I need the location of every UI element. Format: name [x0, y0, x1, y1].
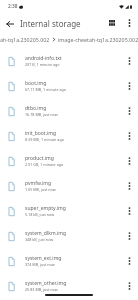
staticText: ah-tq1a.230205.002: [0, 36, 50, 43]
button[interactable]: More options for boot.img: [120, 73, 138, 98]
staticText: product.img: [25, 155, 54, 162]
button[interactable]: system_dlkm.img: [0, 223, 138, 248]
staticText: 16.78 MB, just now: [25, 112, 58, 117]
button[interactable]: More options for android-info.txt: [120, 48, 138, 73]
staticText: boot.img: [25, 80, 47, 87]
button[interactable]: boot.img: [0, 73, 138, 98]
button[interactable]: ah-tq1a.230205.002: [0, 36, 50, 43]
button[interactable]: pvmfw.img: [0, 173, 138, 198]
staticText: system_other.img: [25, 280, 67, 287]
staticText: 25.83 MB, just now: [25, 287, 58, 292]
button[interactable]: More options for system_ext.img: [120, 248, 138, 273]
staticText: dtbo.img: [25, 105, 47, 112]
staticText: 2.91 GB, 1 minute ago: [25, 162, 64, 167]
staticText: Internal storage: [20, 18, 104, 29]
staticText: android-info.txt: [25, 55, 62, 62]
button[interactable]: More options for system_other.img: [120, 273, 138, 298]
staticText: 2:38: [8, 3, 18, 10]
button[interactable]: dtbo.img: [0, 98, 138, 123]
staticText: super_empty.img: [25, 205, 66, 212]
staticText: 67.11 MB, 1 minute ago: [25, 87, 66, 92]
button[interactable]: More options for super_empty.img: [120, 198, 138, 223]
staticText: pvmfw.img: [25, 180, 52, 187]
button[interactable]: product.img: [0, 148, 138, 173]
button[interactable]: system_ext.img: [0, 248, 138, 273]
button[interactable]: More options: [120, 14, 138, 32]
staticText: system_ext.img: [25, 255, 62, 262]
staticText: image-cheetah-tq1a.230205.002: [58, 36, 138, 43]
staticText: 8.39 MB, 1 minute ago: [25, 137, 64, 142]
button[interactable]: More options for system_dlkm.img: [120, 223, 138, 248]
staticText: 374 MB, just now: [25, 262, 55, 267]
button[interactable]: More options for init_boot.img: [120, 123, 138, 148]
staticText: 348 kB, just now: [25, 237, 54, 242]
button[interactable]: More options for dtbo.img: [120, 98, 138, 123]
button[interactable]: Grid view: [104, 14, 120, 32]
staticText: init_boot.img: [25, 130, 57, 137]
staticText: 207 B, 1 minute ago: [25, 62, 60, 67]
button[interactable]: system_other.img: [0, 273, 138, 298]
button[interactable]: super_empty.img: [0, 198, 138, 223]
staticText: 5.18 kB, just now: [25, 212, 55, 217]
staticText: 1.05 MB, just now: [25, 187, 56, 192]
button[interactable]: image-cheetah-tq1a.230205.002: [58, 36, 138, 43]
button[interactable]: android-info.txt: [0, 48, 138, 73]
button[interactable]: More options for product.img: [120, 148, 138, 173]
button[interactable]: Navigate up: [0, 14, 19, 33]
staticText: system_dlkm.img: [25, 230, 66, 237]
button[interactable]: init_boot.img: [0, 123, 138, 148]
button[interactable]: More options for pvmfw.img: [120, 173, 138, 198]
